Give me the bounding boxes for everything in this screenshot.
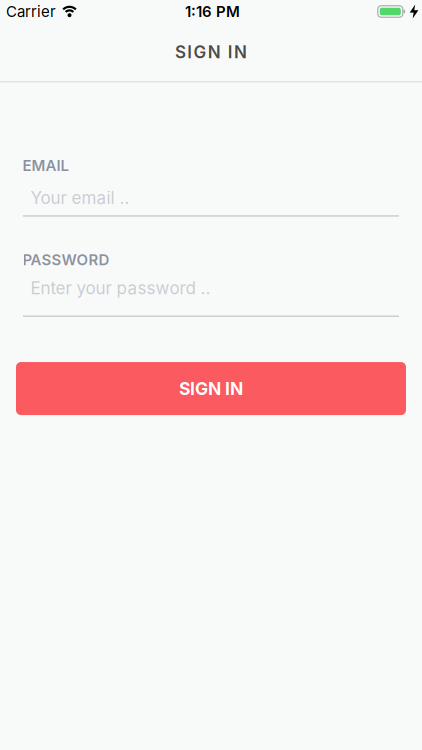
button[interactable]: Your email .. xyxy=(0,187,422,217)
button[interactable]: Enter your password .. xyxy=(0,278,422,317)
staticText: S xyxy=(175,42,186,62)
staticText: EMAIL xyxy=(22,156,68,174)
staticText: PASSWORD xyxy=(22,251,109,269)
staticText: I xyxy=(228,42,233,62)
staticText: G xyxy=(193,42,206,62)
button[interactable]: SIGN IN xyxy=(0,362,422,415)
staticText: Your email .. xyxy=(30,187,129,208)
staticText: N xyxy=(208,42,221,62)
staticText: Enter your password .. xyxy=(30,278,210,298)
staticText: N xyxy=(234,42,247,62)
staticText: SIGN IN xyxy=(179,378,243,399)
staticText: Carrier xyxy=(6,2,56,20)
staticText: 1:16 PM xyxy=(185,2,240,20)
staticText: I xyxy=(187,42,192,62)
